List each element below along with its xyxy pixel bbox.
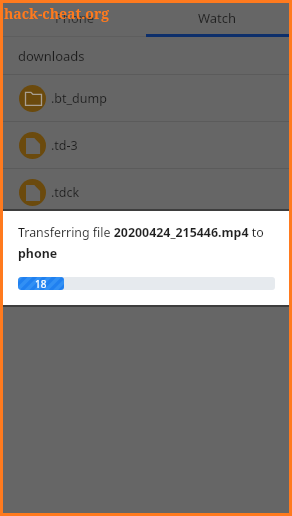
button[interactable]: downloads — [3, 37, 289, 74]
button[interactable]: .bt_dump — [3, 75, 289, 121]
staticText: Watch — [198, 9, 237, 27]
staticText: .bt_dump — [51, 90, 107, 107]
staticText: Transferring file 20200424_215446.mp4 to… — [18, 224, 277, 261]
button[interactable]: .td-3 — [3, 122, 289, 168]
button[interactable]: Phone — [3, 3, 146, 32]
staticText: .td-3 — [51, 137, 78, 154]
button[interactable]: .tdck — [3, 169, 289, 215]
staticText: downloads — [18, 47, 85, 65]
staticText: 18 — [35, 277, 47, 290]
staticText: .tdck — [51, 184, 80, 201]
staticText: Phone — [55, 9, 95, 27]
staticText: hack-cheat.org — [4, 4, 110, 23]
button[interactable]: Watch — [146, 3, 289, 32]
